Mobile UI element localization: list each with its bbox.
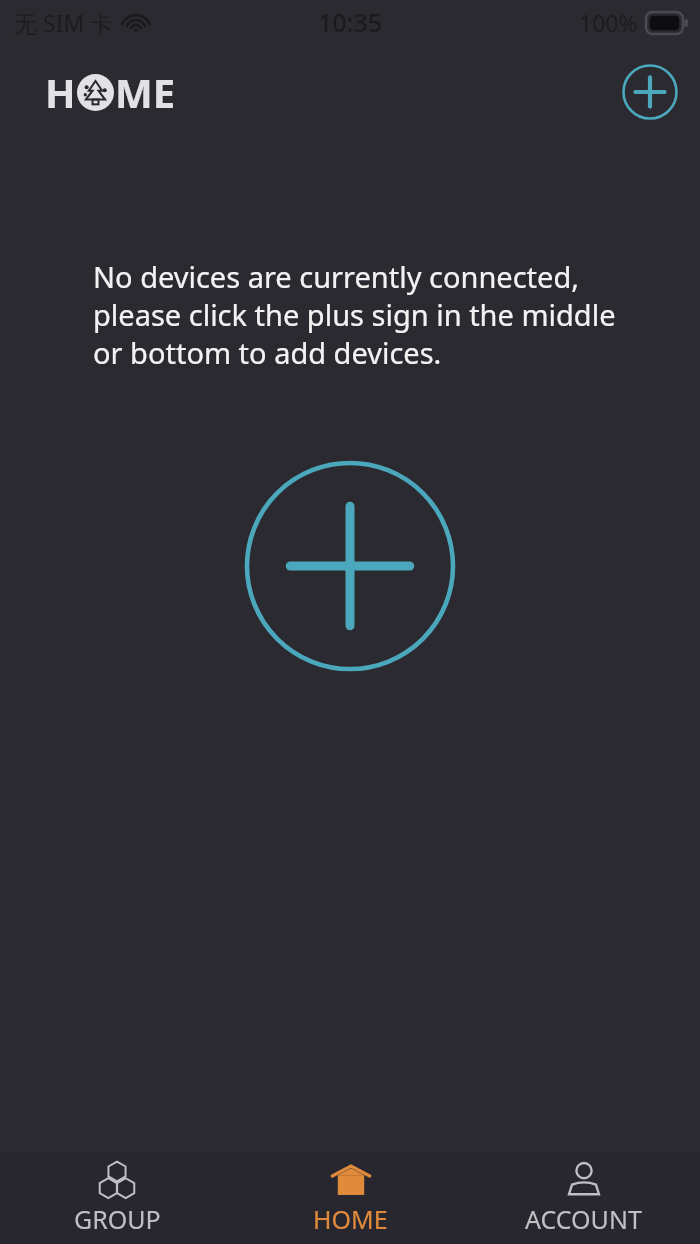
staticText: GROUP <box>74 1202 161 1236</box>
button[interactable]: Add device <box>620 62 680 122</box>
button[interactable]: Add device <box>240 456 460 676</box>
staticText: HOME <box>313 1202 388 1236</box>
button[interactable]: GROUP <box>0 1152 234 1244</box>
staticText: 无 SIM 卡 <box>14 7 114 38</box>
button[interactable]: HOME <box>234 1152 467 1244</box>
staticText: H <box>45 65 76 119</box>
staticText: 100% <box>579 7 638 38</box>
staticText: ACCOUNT <box>525 1202 642 1236</box>
staticText: 10:35 <box>318 5 383 39</box>
staticText: ME <box>115 65 176 119</box>
button[interactable]: ACCOUNT <box>467 1152 700 1244</box>
staticText: No devices are currently connected, plea… <box>93 257 620 372</box>
